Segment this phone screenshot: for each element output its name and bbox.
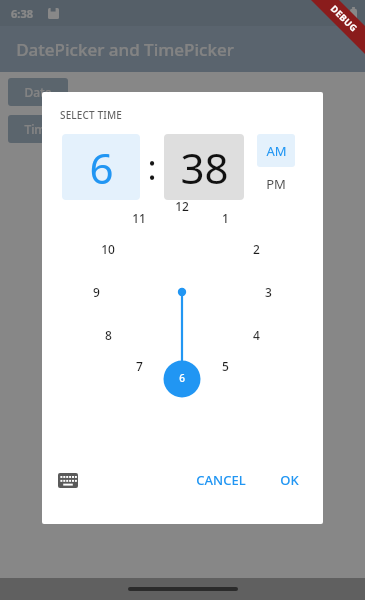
staticText: Date <box>24 84 52 100</box>
staticText: 6 <box>89 139 114 196</box>
staticText: 38 <box>180 139 229 196</box>
button[interactable]: PM <box>257 167 295 200</box>
button[interactable]: 2 <box>243 240 269 258</box>
button[interactable]: 11 <box>126 209 152 227</box>
staticText: 1 <box>222 210 229 226</box>
button[interactable]: Time <box>8 115 68 143</box>
staticText: 10 <box>101 241 115 257</box>
button[interactable]: 3 <box>255 283 281 301</box>
staticText: SELECT TIME <box>60 108 122 122</box>
staticText: 5 <box>222 358 229 374</box>
staticText: AM <box>266 142 287 160</box>
button[interactable]: AM <box>257 134 295 167</box>
button[interactable]: 38 <box>164 134 244 200</box>
button[interactable]: CANCEL <box>186 465 256 495</box>
button[interactable]: 4 <box>243 326 269 344</box>
button[interactable]: Switch to text input <box>54 466 82 494</box>
staticText: PM <box>266 175 286 193</box>
button[interactable]: 6 <box>169 369 195 387</box>
button[interactable]: 10 <box>95 240 121 258</box>
staticText: DatePicker and TimePicker <box>16 38 234 61</box>
staticText: OK <box>280 471 299 489</box>
button[interactable]: Date <box>8 78 68 106</box>
staticText: 12 <box>175 198 189 214</box>
staticText: DEBUG <box>329 2 360 34</box>
button[interactable]: 5 <box>212 357 238 375</box>
button[interactable]: 12 <box>169 197 195 215</box>
staticText: 2 <box>253 241 260 257</box>
staticText: 8 <box>105 327 112 343</box>
staticText: 6 <box>179 371 185 385</box>
button[interactable]: 6 <box>62 134 140 200</box>
button[interactable]: OK <box>270 465 309 495</box>
staticText: Time <box>24 121 53 137</box>
button[interactable]: 7 <box>126 357 152 375</box>
staticText: 4 <box>253 327 260 343</box>
button[interactable]: 1 <box>212 209 238 227</box>
staticText: 6:38 <box>11 6 33 21</box>
staticText: 7 <box>136 358 143 374</box>
staticText: CANCEL <box>196 471 246 489</box>
staticText: 11 <box>132 210 146 226</box>
staticText: : <box>147 144 157 190</box>
button[interactable]: 8 <box>95 326 121 344</box>
staticText: 3 <box>265 284 272 300</box>
staticText: 9 <box>93 284 100 300</box>
button[interactable]: 9 <box>83 283 109 301</box>
